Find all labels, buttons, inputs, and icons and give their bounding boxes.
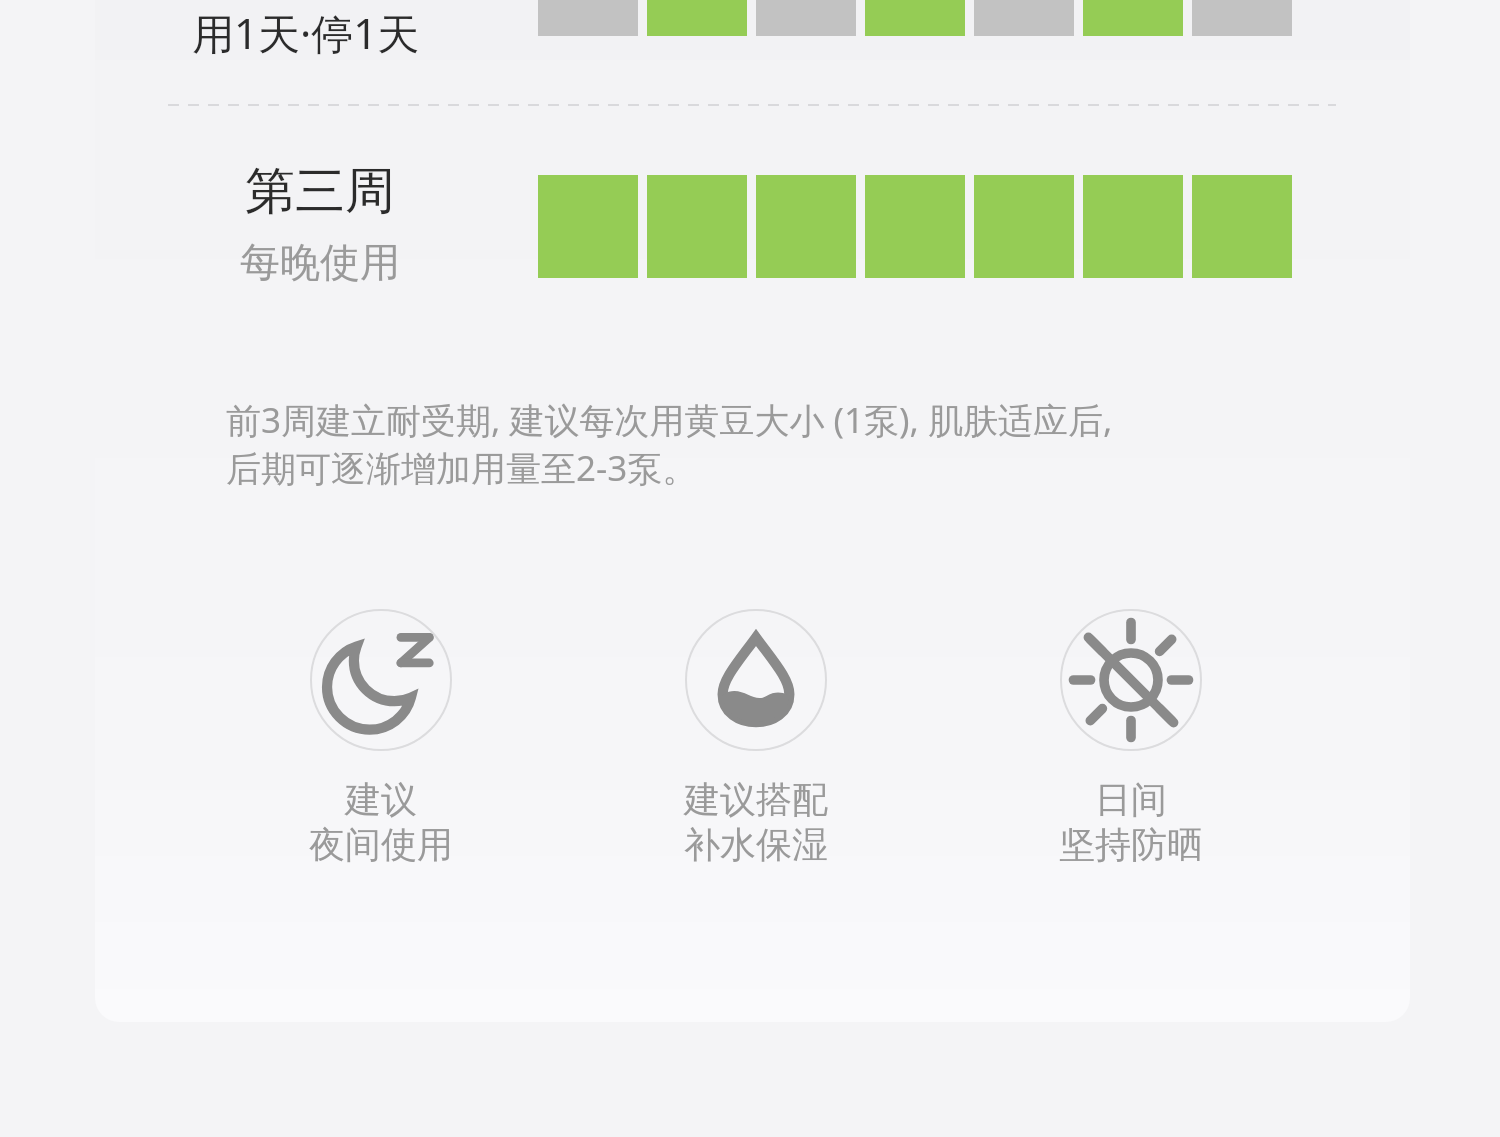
- button[interactable]: 日间坚持防晒: [1011, 609, 1251, 867]
- staticText: 前3周建立耐受期, 建议每次用黄豆大小 (1泵), 肌肤适应后,: [226, 396, 1113, 444]
- other: 建议夜间使用: [310, 609, 452, 751]
- staticText: 每晚使用: [240, 237, 400, 287]
- button[interactable]: 第三周: [190, 160, 450, 287]
- staticText: 建议搭配: [684, 777, 828, 822]
- staticText: 后期可逐渐增加用量至2-3泵。: [226, 444, 698, 492]
- other: 日间坚持防晒: [1060, 609, 1202, 751]
- staticText: 建议: [345, 777, 417, 822]
- staticText: 夜间使用: [309, 822, 453, 867]
- staticText: 第三周: [245, 160, 395, 223]
- button[interactable]: 用1天·停1天: [192, 4, 420, 61]
- staticText: 日间: [1095, 777, 1167, 822]
- button[interactable]: 建议夜间使用: [261, 609, 501, 867]
- staticText: 补水保湿: [684, 822, 828, 867]
- button[interactable]: 建议搭配补水保湿: [636, 609, 876, 867]
- other: 建议搭配补水保湿: [685, 609, 827, 751]
- staticText: 用1天·停1天: [192, 4, 420, 61]
- staticText: 坚持防晒: [1059, 822, 1203, 867]
